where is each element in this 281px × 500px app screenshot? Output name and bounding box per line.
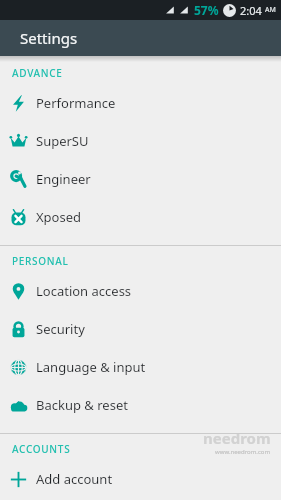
staticText: Engineer [36,170,91,188]
staticText: www.needrom.com [215,448,271,456]
staticText: Add account [36,470,113,488]
staticText: Xposed [36,208,82,226]
staticText: Language & input [36,358,146,376]
staticText: Security [36,320,85,338]
staticText: ADVANCE [12,66,63,80]
button[interactable]: Backup & reset [0,386,281,424]
staticText: SuperSU [36,132,89,150]
button[interactable]: Location access [0,272,281,310]
staticText: AM [265,5,276,15]
staticText: Location access [36,282,132,300]
button[interactable]: Add account [0,460,281,498]
staticText: Settings [20,28,78,48]
staticText: 57% [194,2,219,18]
button[interactable]: SuperSU [0,122,281,160]
button[interactable]: Xposed [0,198,281,236]
staticText: Backup & reset [36,396,128,414]
other: Battery saver [223,4,236,17]
button[interactable]: Performance [0,84,281,122]
staticText: needrom [203,428,271,448]
button[interactable]: Engineer [0,160,281,198]
button[interactable]: Security [0,310,281,348]
staticText: 2:04 [240,3,265,18]
button[interactable]: Language & input [0,348,281,386]
staticText: ACCOUNTS [12,442,71,456]
staticText: Performance [36,94,116,112]
staticText: PERSONAL [12,254,69,268]
